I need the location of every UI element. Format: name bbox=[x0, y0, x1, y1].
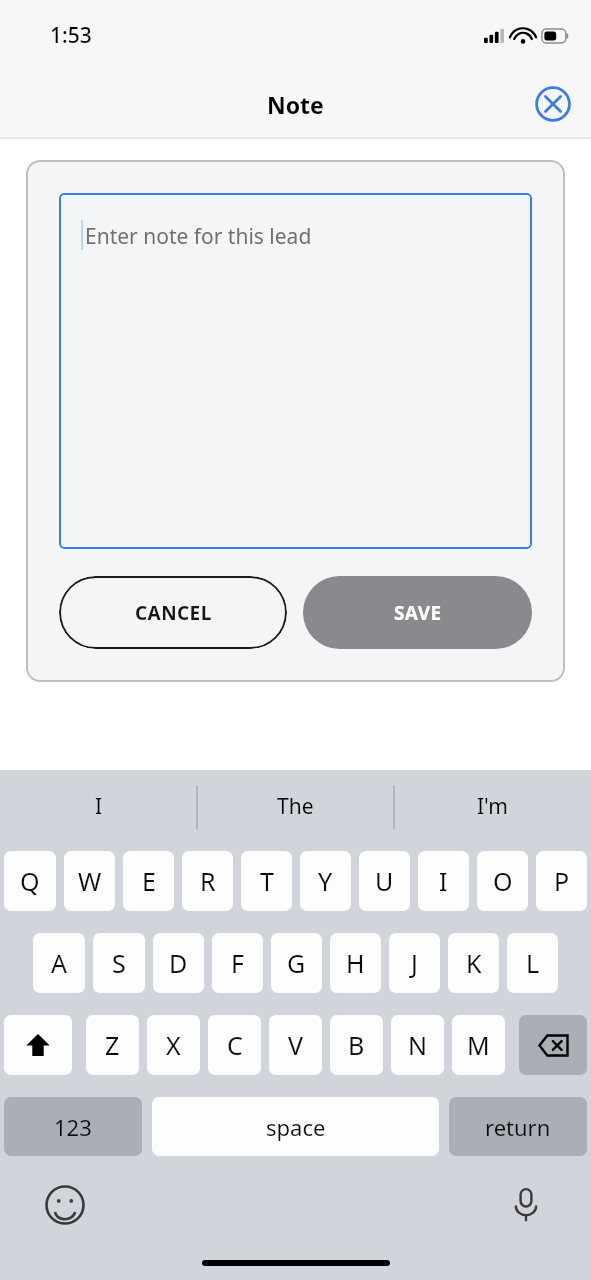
button[interactable]: E bbox=[123, 851, 174, 911]
button[interactable]: I bbox=[418, 851, 469, 911]
button[interactable]: M bbox=[452, 1015, 505, 1075]
button[interactable]: F bbox=[212, 933, 263, 993]
staticText: G bbox=[287, 946, 306, 980]
button[interactable]: L bbox=[507, 933, 558, 993]
button[interactable]: X bbox=[147, 1015, 200, 1075]
staticText: SAVE bbox=[394, 600, 442, 626]
button[interactable]: Delete bbox=[519, 1015, 587, 1075]
staticText: D bbox=[169, 946, 188, 980]
button[interactable]: Emoji bbox=[42, 1182, 88, 1228]
button[interactable]: space bbox=[152, 1097, 439, 1156]
button[interactable]: CANCEL bbox=[59, 576, 287, 649]
button[interactable]: Z bbox=[86, 1015, 139, 1075]
staticText: S bbox=[112, 946, 126, 980]
button[interactable]: Q bbox=[4, 851, 56, 911]
staticText: return bbox=[485, 1112, 551, 1142]
staticText: I bbox=[439, 864, 448, 898]
staticText: W bbox=[78, 864, 102, 898]
button[interactable]: Dictate bbox=[503, 1182, 549, 1228]
button[interactable]: Enter note for this lead bbox=[59, 193, 532, 549]
staticText: C bbox=[227, 1028, 243, 1062]
staticText: R bbox=[200, 864, 216, 898]
staticText: I bbox=[95, 792, 103, 821]
button[interactable]: H bbox=[330, 933, 381, 993]
staticText: P bbox=[554, 864, 570, 898]
staticText: Q bbox=[20, 864, 40, 898]
staticText: M bbox=[467, 1028, 490, 1062]
button[interactable]: The bbox=[197, 770, 394, 842]
button[interactable]: Close bbox=[533, 84, 573, 124]
staticText: Enter note for this lead bbox=[85, 222, 312, 251]
staticText: O bbox=[493, 864, 513, 898]
staticText: N bbox=[408, 1028, 428, 1062]
staticText: U bbox=[375, 864, 394, 898]
button[interactable]: U bbox=[359, 851, 410, 911]
button[interactable]: A bbox=[33, 933, 85, 993]
staticText: 123 bbox=[54, 1112, 92, 1142]
button[interactable]: V bbox=[269, 1015, 322, 1075]
button[interactable]: D bbox=[153, 933, 204, 993]
staticText: The bbox=[277, 792, 314, 821]
button[interactable]: B bbox=[330, 1015, 383, 1075]
staticText: K bbox=[466, 946, 482, 980]
staticText: V bbox=[288, 1028, 304, 1062]
staticText: Note bbox=[267, 89, 324, 120]
button[interactable]: T bbox=[241, 851, 292, 911]
button[interactable]: C bbox=[208, 1015, 261, 1075]
button[interactable]: Shift bbox=[4, 1015, 72, 1075]
staticText: Y bbox=[318, 864, 333, 898]
staticText: J bbox=[411, 946, 418, 980]
staticText: H bbox=[346, 946, 365, 980]
button[interactable]: I bbox=[0, 770, 197, 842]
staticText: A bbox=[51, 946, 67, 980]
button[interactable]: R bbox=[182, 851, 233, 911]
button[interactable]: return bbox=[449, 1097, 587, 1156]
button[interactable]: J bbox=[389, 933, 440, 993]
button[interactable]: Y bbox=[300, 851, 351, 911]
staticText: B bbox=[348, 1028, 365, 1062]
button[interactable]: SAVE bbox=[303, 576, 532, 649]
button[interactable]: N bbox=[391, 1015, 444, 1075]
button[interactable]: I'm bbox=[394, 770, 591, 842]
button[interactable]: P bbox=[536, 851, 587, 911]
staticText: L bbox=[526, 946, 540, 980]
staticText: E bbox=[142, 864, 156, 898]
staticText: T bbox=[260, 864, 274, 898]
staticText: CANCEL bbox=[135, 600, 212, 626]
button[interactable]: 123 bbox=[4, 1097, 142, 1156]
staticText: space bbox=[266, 1112, 326, 1142]
button[interactable]: K bbox=[448, 933, 499, 993]
staticText: X bbox=[166, 1028, 181, 1062]
staticText: Z bbox=[105, 1028, 120, 1062]
button[interactable]: O bbox=[477, 851, 528, 911]
staticText: I'm bbox=[477, 792, 508, 821]
button[interactable]: S bbox=[93, 933, 145, 993]
button[interactable]: W bbox=[64, 851, 115, 911]
staticText: 1:53 bbox=[50, 21, 92, 50]
button[interactable]: G bbox=[271, 933, 322, 993]
staticText: F bbox=[231, 946, 244, 980]
